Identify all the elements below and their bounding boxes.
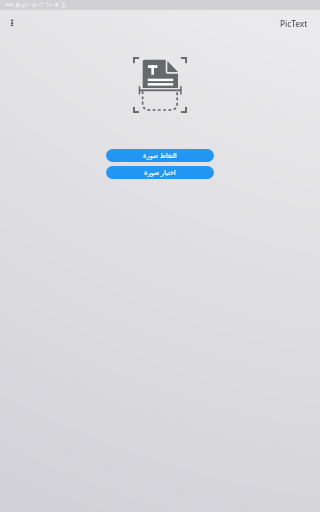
button[interactable]: التقاط صورة — [106, 149, 214, 162]
button[interactable]: اختيار صورة — [106, 166, 214, 179]
staticText: PicText — [280, 18, 308, 29]
staticText: التقاط صورة — [143, 151, 177, 160]
staticText: اختيار صورة — [144, 168, 176, 177]
button[interactable]: More options — [0, 10, 24, 38]
